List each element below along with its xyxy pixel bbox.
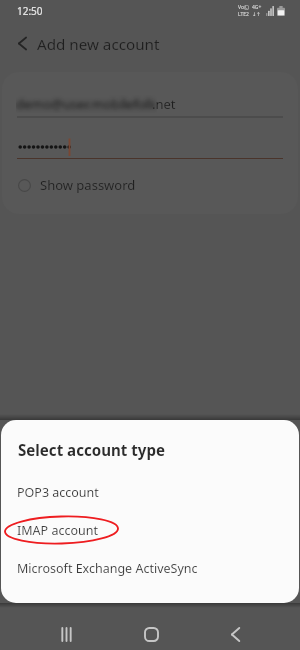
button[interactable]: IMAP account <box>1 515 299 545</box>
button[interactable]: Show password <box>18 175 136 195</box>
button[interactable]: Microsoft Exchange ActiveSync <box>1 553 299 583</box>
button[interactable]: Home <box>131 618 171 650</box>
staticText: LTE2 <box>238 11 249 18</box>
button[interactable]: Back <box>215 618 255 650</box>
staticText: Select account type <box>18 440 165 461</box>
staticText: .net <box>152 95 176 113</box>
staticText: VoⓁ <box>238 4 249 11</box>
button[interactable]: Recent apps <box>46 618 86 650</box>
button[interactable]: Navigate up <box>9 30 36 57</box>
staticText: demo@user.mobilefolk <box>16 95 157 113</box>
button[interactable]: POP3 account <box>1 477 299 507</box>
staticText: 12:50 <box>17 4 43 18</box>
staticText: POP3 account <box>17 484 99 501</box>
staticText: Microsoft Exchange ActiveSync <box>17 560 198 577</box>
staticText: Show password <box>40 176 136 194</box>
staticText: ↓↑ <box>252 11 261 17</box>
staticText: IMAP account <box>17 522 98 539</box>
staticText: Add new account <box>37 34 160 55</box>
staticText: 4G+ <box>252 4 262 11</box>
